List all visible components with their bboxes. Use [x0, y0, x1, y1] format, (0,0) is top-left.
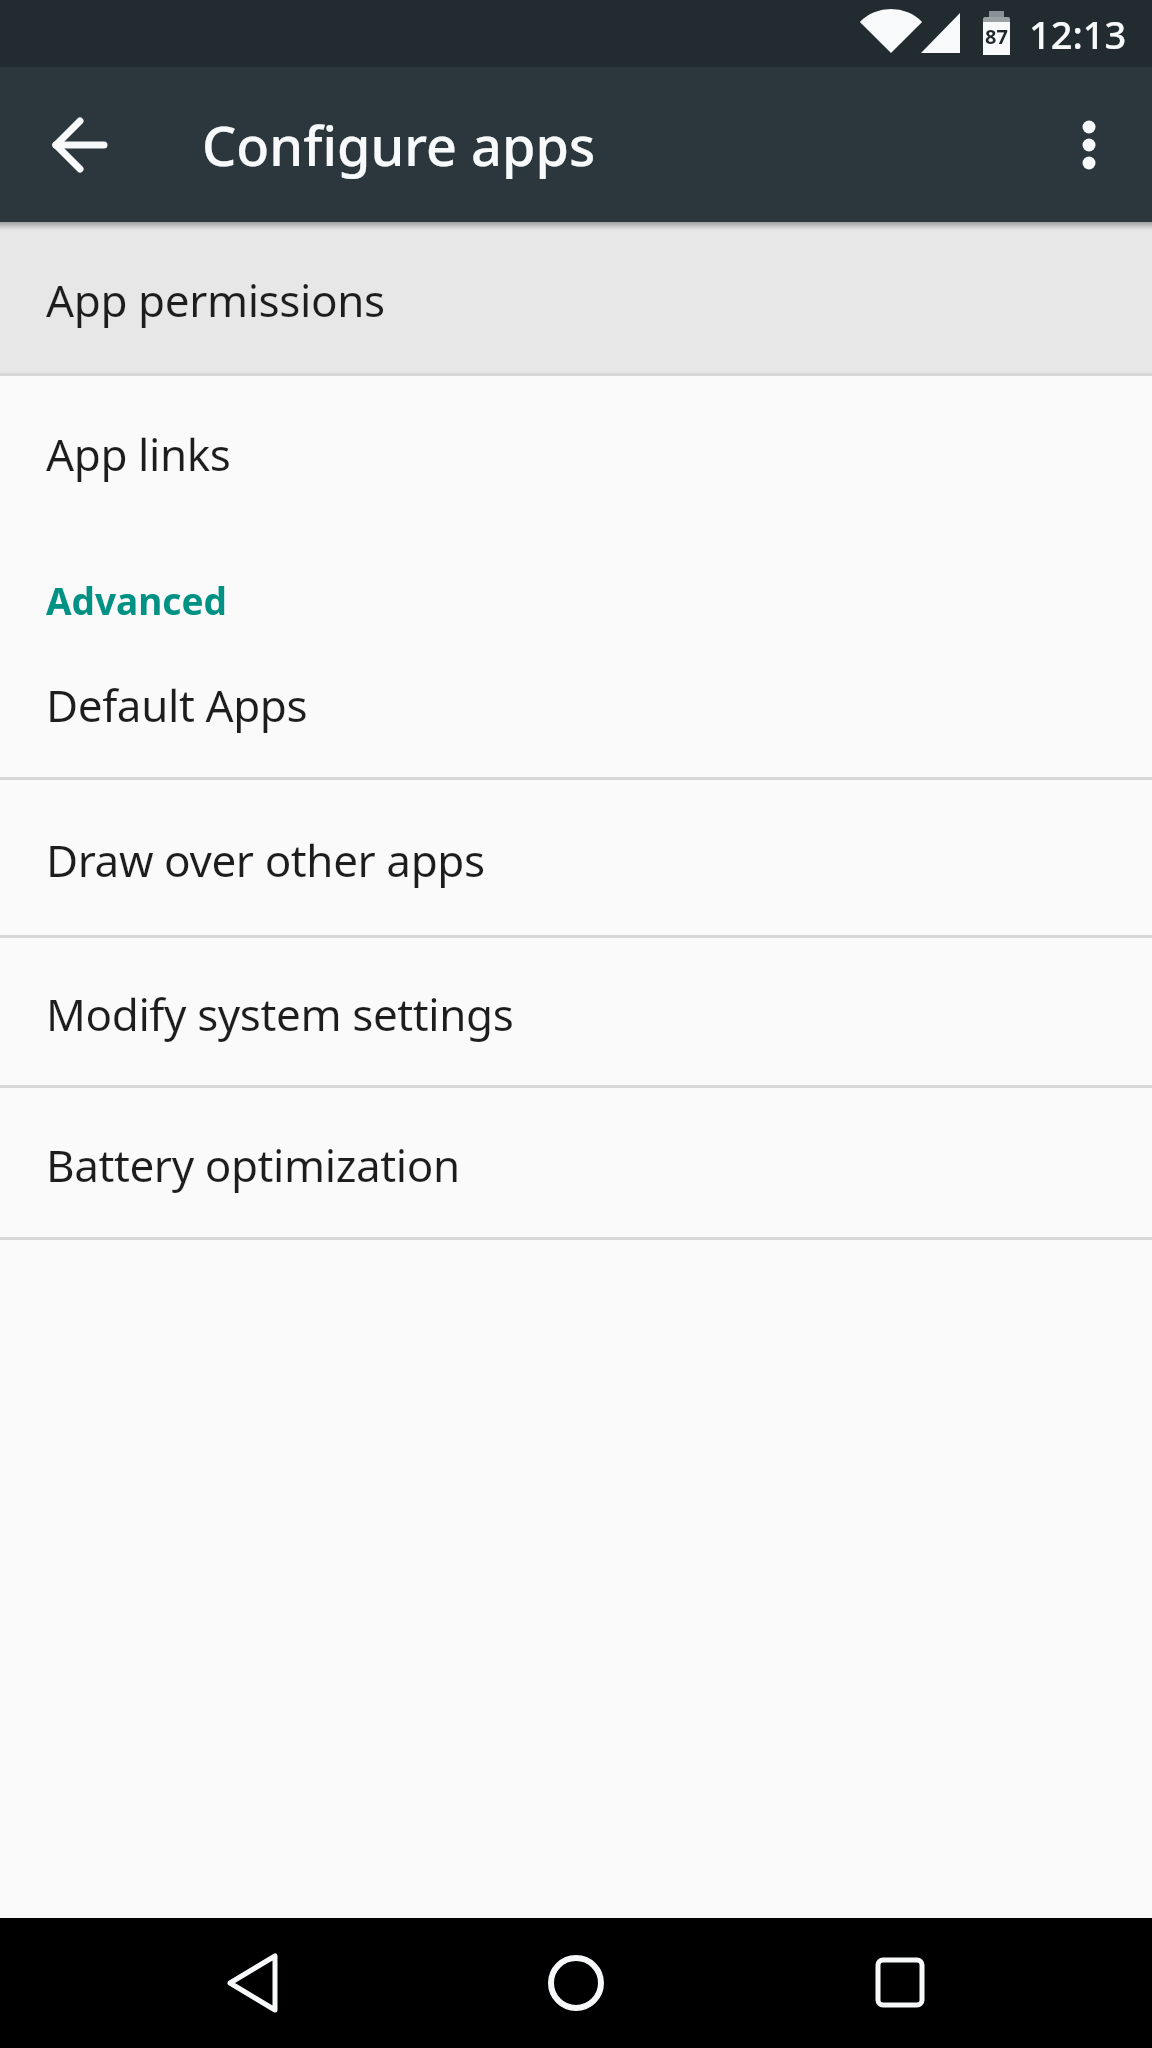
- button[interactable]: App links: [0, 376, 1152, 526]
- staticText: Configure apps: [202, 108, 596, 182]
- staticText: Draw over other apps: [46, 830, 485, 890]
- staticText: App links: [46, 424, 231, 484]
- button[interactable]: Modify system settings: [0, 938, 1152, 1085]
- button[interactable]: [540, 1947, 612, 2019]
- button[interactable]: [216, 1947, 288, 2019]
- staticText: Battery optimization: [46, 1135, 460, 1195]
- button[interactable]: [864, 1947, 936, 2019]
- button[interactable]: Draw over other apps: [0, 780, 1152, 935]
- button[interactable]: [44, 109, 116, 181]
- button[interactable]: Battery optimization: [0, 1088, 1152, 1237]
- staticText: 12:13: [1029, 8, 1127, 60]
- button[interactable]: Default Apps: [0, 627, 1152, 777]
- button[interactable]: [1061, 117, 1117, 173]
- staticText: Modify system settings: [46, 984, 514, 1044]
- button[interactable]: App permissions: [0, 222, 1152, 373]
- staticText: Advanced: [46, 575, 227, 625]
- staticText: App permissions: [46, 270, 385, 330]
- staticText: Default Apps: [46, 675, 308, 735]
- staticText: 87: [983, 23, 1010, 50]
